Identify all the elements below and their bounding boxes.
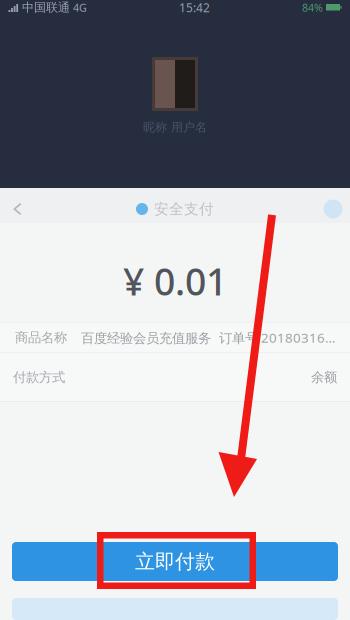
staticText: 百度经验会员充值服务 订单号 20180316008871 xyxy=(81,329,340,347)
staticText: 昵称 用户名 xyxy=(143,120,207,135)
staticText: ¥ 0.01 xyxy=(123,256,227,306)
staticText: 中国联通 xyxy=(22,0,70,15)
staticText: 商品名称 xyxy=(15,329,67,346)
staticText: 余额 xyxy=(311,369,337,385)
staticText: 84% xyxy=(302,0,323,15)
staticText: 安全支付 xyxy=(154,200,214,218)
staticText: 立即付款 xyxy=(135,549,215,574)
staticText: 4G xyxy=(73,0,87,15)
button[interactable]: 立即付款 xyxy=(12,542,338,581)
staticText: 15:42 xyxy=(179,0,210,15)
staticText: 付款方式 xyxy=(13,369,65,385)
button[interactable]: Back xyxy=(0,195,34,223)
button[interactable]: Help xyxy=(316,195,350,223)
